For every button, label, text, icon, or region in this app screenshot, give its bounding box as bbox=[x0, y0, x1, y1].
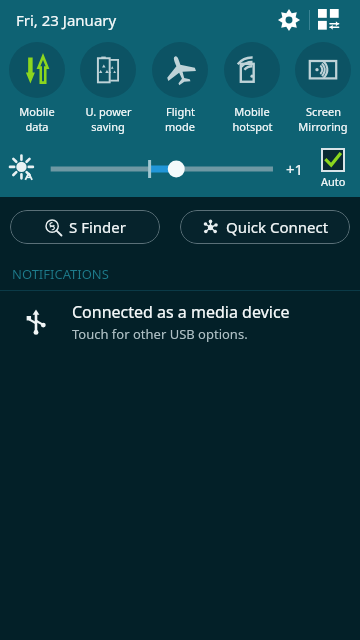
button[interactable]: Screen bbox=[288, 40, 358, 140]
staticText: Mirroring bbox=[298, 119, 348, 134]
button[interactable]: Mobile bbox=[217, 40, 287, 140]
button[interactable]: Connected as a media device bbox=[0, 291, 360, 353]
staticText: saving bbox=[91, 119, 125, 134]
staticText: mode bbox=[165, 119, 195, 134]
staticText: data bbox=[25, 119, 49, 134]
staticText: Mobile bbox=[19, 104, 55, 119]
button[interactable]: Auto bbox=[310, 140, 356, 197]
staticText: hotspot bbox=[232, 119, 273, 134]
staticText: Auto bbox=[321, 174, 346, 189]
staticText: Quick Connect bbox=[226, 217, 329, 237]
staticText: Screen bbox=[306, 104, 341, 119]
button[interactable]: S Finder bbox=[10, 210, 160, 244]
button[interactable]: U. power bbox=[73, 40, 143, 140]
staticText: Touch for other USB options. bbox=[72, 325, 248, 343]
staticText: Fri, 23 January bbox=[16, 10, 117, 30]
staticText: Mobile bbox=[234, 104, 270, 119]
staticText: U. power bbox=[85, 104, 132, 119]
staticText: S Finder bbox=[69, 217, 126, 237]
button[interactable]: Settings bbox=[269, 0, 309, 40]
staticText: Connected as a media device bbox=[72, 301, 290, 323]
button[interactable] bbox=[46, 140, 280, 197]
button[interactable]: Mobile bbox=[2, 40, 72, 140]
staticText: Flight bbox=[166, 104, 195, 119]
staticText: NOTIFICATIONS bbox=[12, 265, 109, 283]
button[interactable]: Edit quick settings bbox=[310, 0, 348, 40]
button[interactable]: Quick Connect bbox=[180, 210, 350, 244]
button[interactable]: Flight bbox=[145, 40, 215, 140]
staticText: +1 bbox=[286, 159, 304, 179]
button[interactable]: Brightness bbox=[0, 140, 46, 197]
